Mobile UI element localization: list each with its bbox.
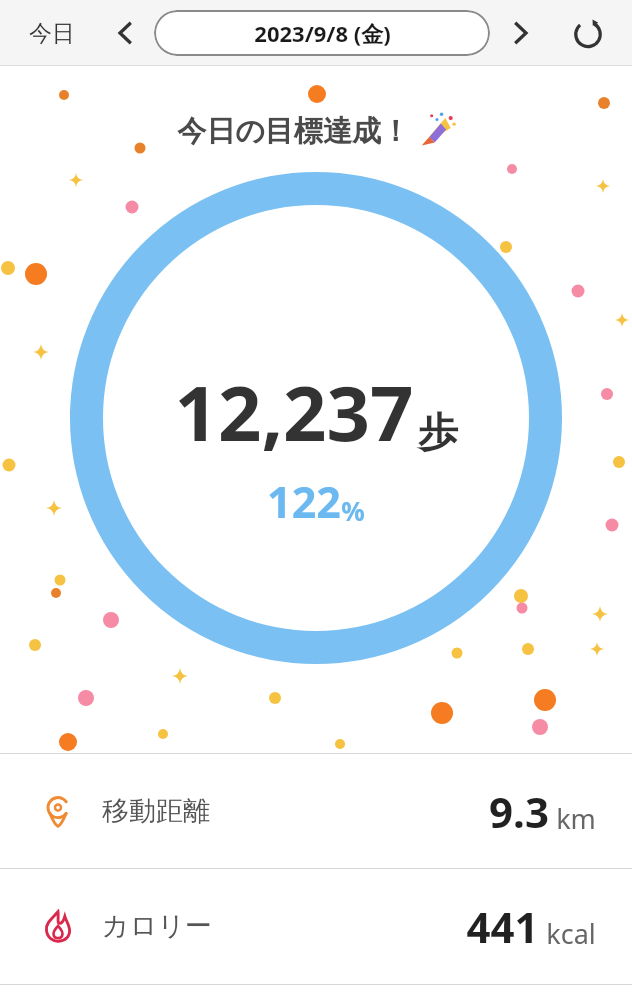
staticText: 移動距離 (102, 794, 210, 828)
button[interactable]: 更新 (550, 0, 626, 66)
button[interactable]: 移動距離 (0, 754, 632, 868)
staticText: km (556, 800, 596, 837)
staticText: % (341, 493, 365, 528)
staticText: 歩 (418, 407, 458, 457)
staticText: 2023/9/8 (金) (254, 18, 391, 48)
staticText: 441 (466, 898, 539, 955)
staticText: 12,237 (174, 360, 414, 464)
button[interactable]: 今日 (6, 0, 98, 66)
button[interactable]: 2023/9/8 (金) (154, 10, 490, 56)
staticText: 122 (267, 472, 341, 531)
staticText: カロリー (102, 909, 212, 943)
staticText: 今日 (29, 19, 75, 48)
button[interactable]: 次の日 (490, 0, 550, 66)
button[interactable]: 前の日 (98, 0, 154, 66)
button[interactable]: カロリー (0, 869, 632, 983)
staticText: kcal (546, 915, 596, 952)
staticText: 9.3 (489, 783, 549, 840)
staticText: 今日の目標達成！ (177, 113, 410, 150)
